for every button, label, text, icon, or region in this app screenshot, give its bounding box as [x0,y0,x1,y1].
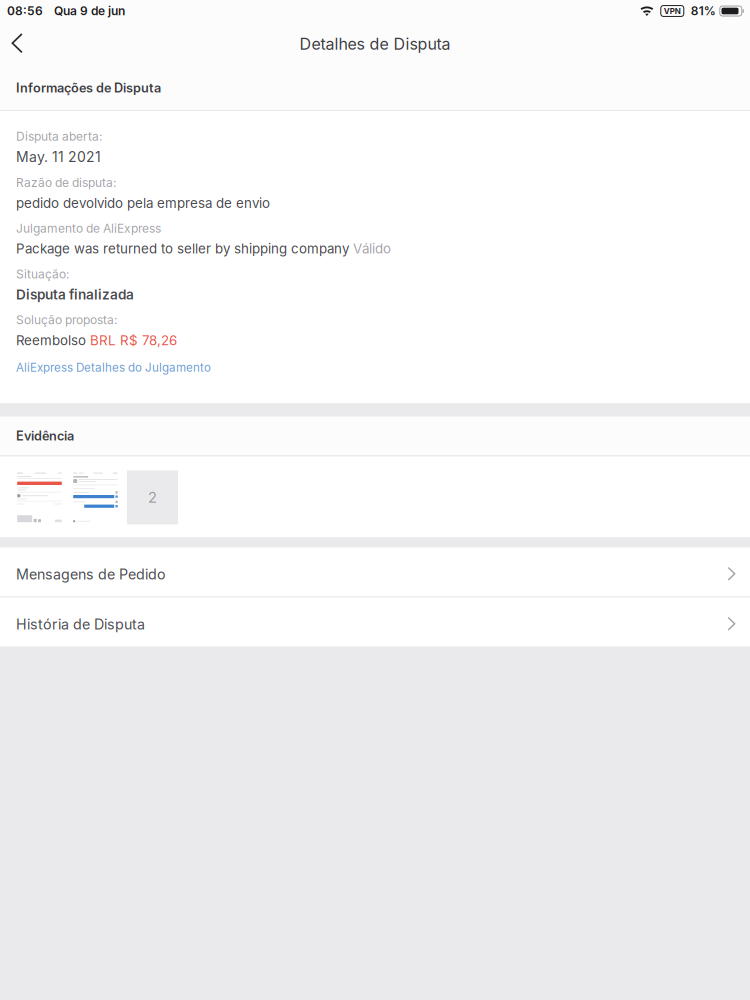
staticText: 08:56 [7,4,43,18]
staticText: Informações de Disputa [16,80,161,96]
staticText: Julgamento de AliExpress [16,221,161,236]
staticText: 2 [148,489,157,506]
staticText: Válido [353,241,391,257]
button[interactable]: Mensagens de Pedido [0,547,750,596]
staticText: Situação: [16,267,69,281]
button[interactable]: História de Disputa [0,597,750,646]
button[interactable]: Evidence screenshot 2 [71,470,120,524]
button[interactable]: Back [1,22,35,66]
staticText: pedido devolvido pela empresa de envio [16,195,270,211]
staticText: Disputa finalizada [16,286,134,303]
staticText: May. 11 2021 [16,148,101,165]
staticText: VPN [664,6,681,16]
staticText: 81% [691,4,716,18]
staticText: Package was returned to seller by shippi… [16,241,349,257]
button[interactable]: Evidence screenshot 1 [15,470,64,524]
staticText: Detalhes de Disputa [299,34,450,54]
staticText: Solução proposta: [16,313,117,327]
staticText: Razão de disputa: [16,175,116,190]
staticText: Disputa aberta: [16,129,102,143]
staticText: BRL R$ 78,26 [90,332,177,348]
staticText: História de Disputa [16,616,145,633]
staticText: Evidência [16,428,74,444]
staticText: AliExpress Detalhes do Julgamento [16,360,211,374]
button[interactable]: 2 more evidence items [127,470,178,524]
staticText: Mensagens de Pedido [16,566,166,583]
button[interactable]: AliExpress Detalhes do Julgamento [16,358,211,376]
staticText: Qua 9 de jun [54,4,125,18]
staticText: Reembolso [16,332,86,348]
